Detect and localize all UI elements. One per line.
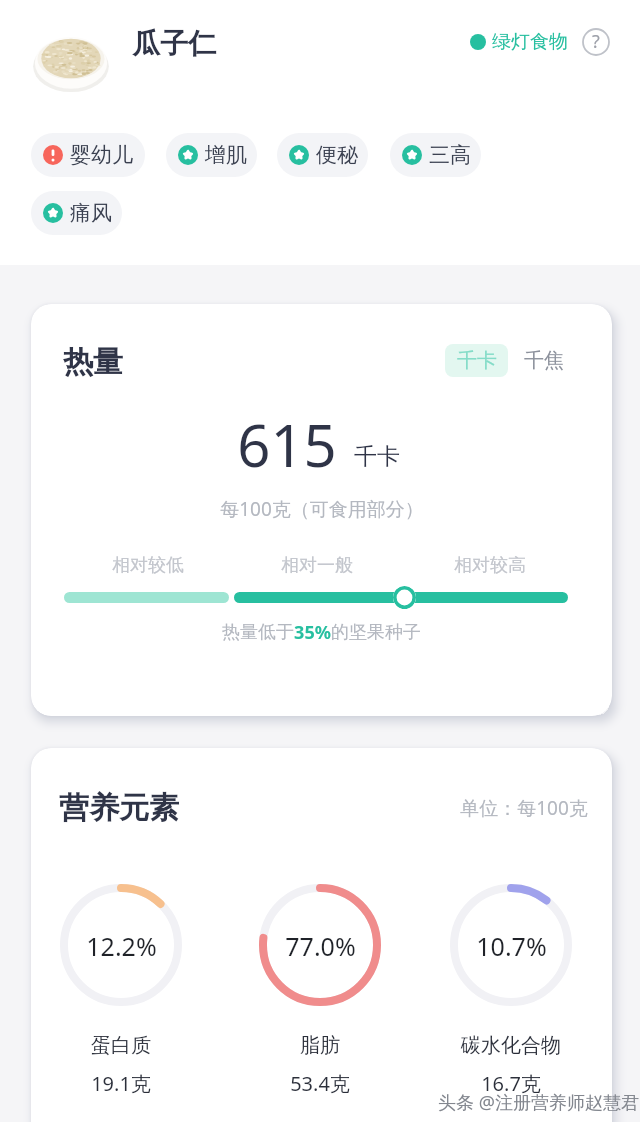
button[interactable]: 千焦 <box>518 344 570 377</box>
button[interactable]: 增肌 <box>166 133 257 177</box>
staticText: 千焦 <box>524 348 564 373</box>
staticText: 相对较低 <box>112 554 184 577</box>
staticText: 19.1克 <box>91 1070 151 1097</box>
staticText: 便秘 <box>316 142 358 168</box>
staticText: 热量低于 <box>222 621 294 644</box>
staticText: 营养元素 <box>59 789 179 827</box>
button[interactable]: 婴幼儿 <box>31 133 145 177</box>
staticText: ? <box>592 29 600 54</box>
staticText: 蛋白质 <box>91 1033 151 1058</box>
button[interactable]: 千卡 <box>445 344 508 377</box>
staticText: 77.0% <box>285 929 356 963</box>
staticText: 615 <box>237 405 337 484</box>
staticText: 的坚果种子 <box>331 621 421 644</box>
staticText: 三高 <box>429 142 471 168</box>
staticText: 相对一般 <box>281 554 353 577</box>
staticText: 35% <box>294 620 331 645</box>
staticText: 增肌 <box>205 142 247 168</box>
button[interactable]: 绿灯食物 <box>470 30 568 54</box>
staticText: 千卡 <box>457 348 497 373</box>
staticText: 热量 <box>63 343 123 381</box>
staticText: 头条 @注册营养师赵慧君 <box>438 1090 639 1115</box>
staticText: 痛风 <box>70 200 112 226</box>
button[interactable]: Slider <box>393 586 416 609</box>
button[interactable]: Help <box>582 28 610 56</box>
button[interactable]: 三高 <box>390 133 481 177</box>
staticText: 瓜子仁 <box>132 26 216 61</box>
staticText: 相对较高 <box>454 554 526 577</box>
button[interactable]: 便秘 <box>277 133 368 177</box>
staticText: 12.2% <box>86 929 157 963</box>
staticText: 16.7克 <box>481 1070 541 1097</box>
staticText: 绿灯食物 <box>492 30 568 54</box>
button[interactable]: 痛风 <box>31 191 122 235</box>
staticText: 千卡 <box>354 442 400 471</box>
staticText: 每100克（可食用部分） <box>220 496 424 522</box>
staticText: 10.7% <box>476 929 547 963</box>
staticText: 单位：每100克 <box>460 795 588 821</box>
staticText: 脂肪 <box>300 1033 340 1058</box>
staticText: 53.4克 <box>290 1070 350 1097</box>
staticText: 碳水化合物 <box>461 1033 561 1058</box>
staticText: 婴幼儿 <box>70 142 133 168</box>
